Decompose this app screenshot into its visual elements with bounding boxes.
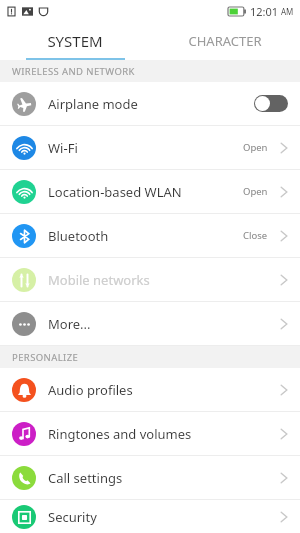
staticText: SYSTEM xyxy=(47,31,103,51)
button[interactable]: Call settings xyxy=(0,456,300,499)
button[interactable]: Mobile networks xyxy=(0,258,300,301)
staticText: CHARACTER xyxy=(188,32,262,50)
staticText: Ringtones and volumes xyxy=(48,425,280,443)
button[interactable]: Airplane mode xyxy=(0,82,300,125)
button[interactable]: Ringtones and volumes xyxy=(0,412,300,455)
staticText: 12:01 xyxy=(250,4,279,19)
staticText: More... xyxy=(48,315,280,333)
button[interactable]: Location-based WLAN xyxy=(0,170,300,213)
button[interactable]: SYSTEM xyxy=(0,22,150,60)
staticText: Security xyxy=(48,508,280,526)
button[interactable]: Airplane mode toggle xyxy=(254,95,288,112)
button[interactable]: Audio profiles xyxy=(0,368,300,411)
staticText: Wi-Fi xyxy=(48,139,243,157)
staticText: PERSONALIZE xyxy=(12,351,79,364)
staticText: Call settings xyxy=(48,469,280,487)
button[interactable]: CHARACTER xyxy=(150,22,300,60)
button[interactable]: Bluetooth xyxy=(0,214,300,257)
button[interactable]: More... xyxy=(0,302,300,345)
button[interactable]: Security xyxy=(0,500,300,533)
staticText: WIRELESS AND NETWORK xyxy=(12,65,135,78)
button[interactable]: Wi-Fi xyxy=(0,126,300,169)
staticText: Close xyxy=(243,229,268,242)
staticText: Airplane mode xyxy=(48,95,254,113)
staticText: AM xyxy=(281,6,294,17)
staticText: Open xyxy=(243,185,268,198)
staticText: Bluetooth xyxy=(48,227,243,245)
staticText: Audio profiles xyxy=(48,381,280,399)
staticText: Mobile networks xyxy=(48,271,280,289)
staticText: Location-based WLAN xyxy=(48,183,243,201)
staticText: Open xyxy=(243,141,268,154)
